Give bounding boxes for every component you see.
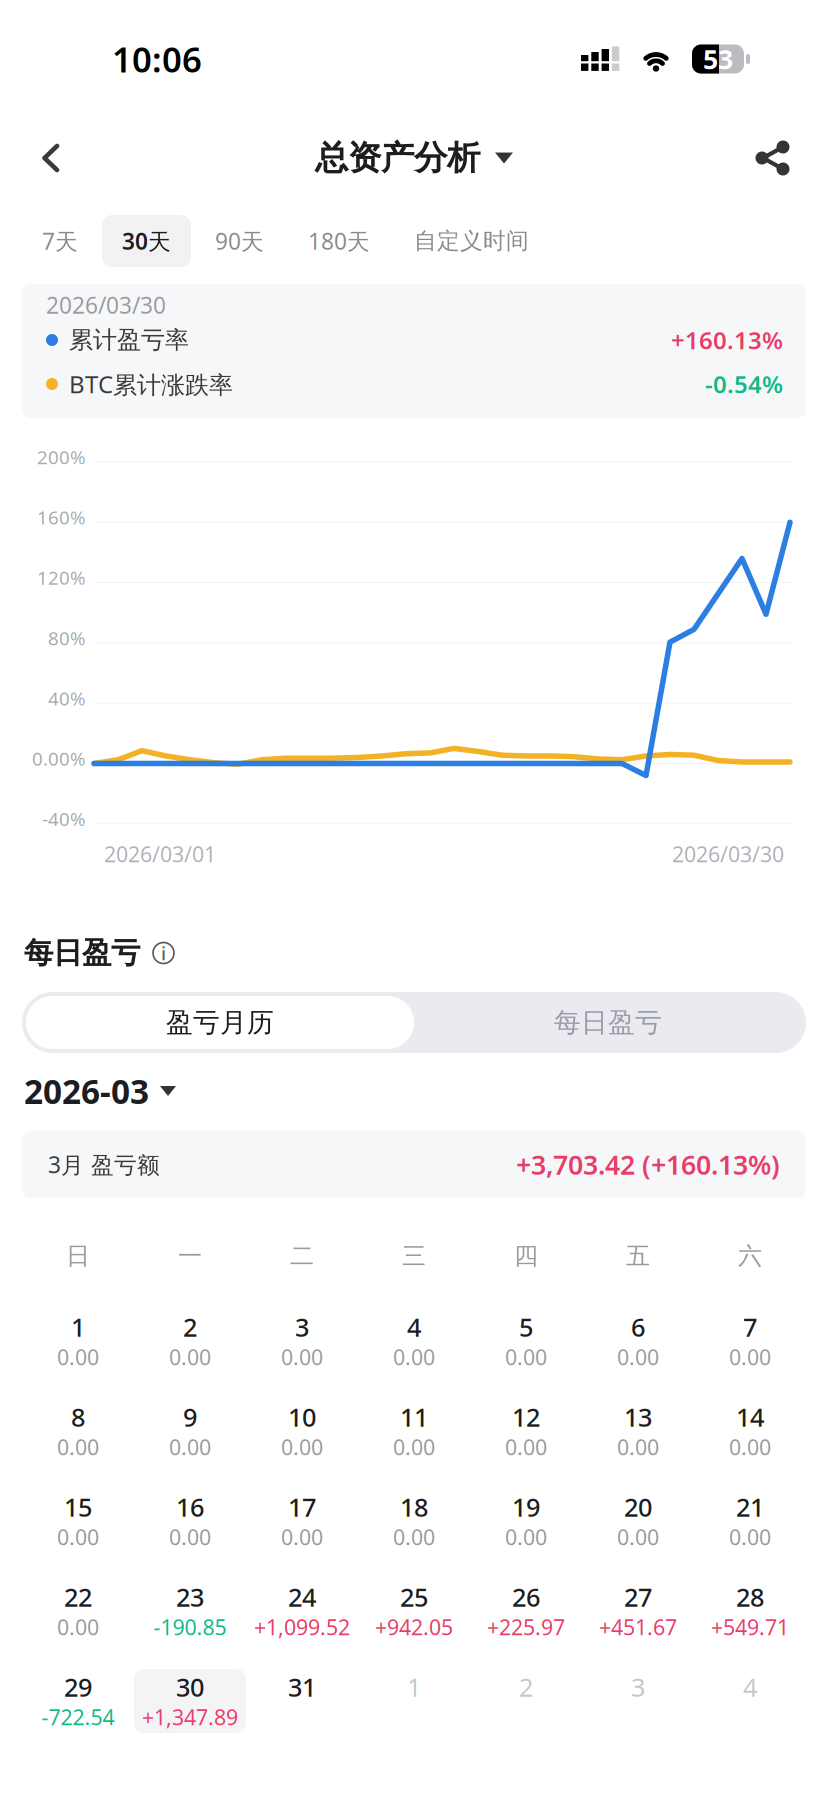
button[interactable]: 24 bbox=[246, 1579, 358, 1643]
staticText: 0.00 bbox=[57, 1523, 99, 1551]
button[interactable]: 17 bbox=[246, 1489, 358, 1553]
button[interactable]: 1 bbox=[358, 1669, 470, 1733]
button[interactable]: 1 bbox=[22, 1309, 134, 1373]
staticText: 0.00 bbox=[281, 1343, 323, 1371]
button[interactable]: 6 bbox=[582, 1309, 694, 1373]
staticText: -40% bbox=[42, 806, 86, 831]
button[interactable]: 13 bbox=[582, 1399, 694, 1463]
staticText: +1,347.89 bbox=[142, 1703, 238, 1731]
button[interactable]: 2026-03 bbox=[0, 1071, 176, 1111]
button[interactable]: 3 bbox=[246, 1309, 358, 1373]
button[interactable]: 27 bbox=[582, 1579, 694, 1643]
staticText: 11 bbox=[400, 1400, 428, 1434]
staticText: 2026/03/30 bbox=[672, 840, 784, 868]
staticText: 每日盈亏 bbox=[24, 935, 140, 971]
staticText: 1 bbox=[407, 1670, 421, 1704]
staticText: 31 bbox=[288, 1670, 316, 1704]
button[interactable]: 180天 bbox=[288, 215, 390, 267]
button[interactable]: 16 bbox=[134, 1489, 246, 1553]
button[interactable]: Share bbox=[731, 121, 814, 195]
button[interactable]: 29 bbox=[22, 1669, 134, 1733]
button[interactable]: 2 bbox=[470, 1669, 582, 1733]
button[interactable]: 4 bbox=[358, 1309, 470, 1373]
button[interactable]: 21 bbox=[694, 1489, 806, 1553]
button[interactable]: 自定义时间 bbox=[394, 216, 549, 266]
staticText: 120% bbox=[37, 565, 86, 590]
staticText: 五 bbox=[626, 1241, 650, 1271]
staticText: 0.00 bbox=[281, 1523, 323, 1551]
button[interactable]: 9 bbox=[134, 1399, 246, 1463]
staticText: 三 bbox=[402, 1241, 426, 1271]
button[interactable]: 18 bbox=[358, 1489, 470, 1553]
button[interactable]: 10 bbox=[246, 1399, 358, 1463]
button[interactable]: 31 bbox=[246, 1669, 358, 1733]
button[interactable]: 每日盈亏 bbox=[414, 996, 802, 1049]
staticText: 二 bbox=[290, 1241, 314, 1271]
button[interactable]: 2 bbox=[134, 1309, 246, 1373]
button[interactable]: 30天 bbox=[102, 215, 191, 267]
staticText: 12 bbox=[512, 1400, 540, 1434]
button[interactable]: 25 bbox=[358, 1579, 470, 1643]
button[interactable]: 15 bbox=[22, 1489, 134, 1553]
staticText: 17 bbox=[288, 1490, 316, 1524]
staticText: 15 bbox=[64, 1490, 92, 1524]
button[interactable]: 11 bbox=[358, 1399, 470, 1463]
staticText: 2026/03/30 bbox=[46, 290, 166, 320]
staticText: +1,099.52 bbox=[254, 1613, 350, 1641]
staticText: 9 bbox=[183, 1400, 197, 1434]
button[interactable]: 14 bbox=[694, 1399, 806, 1463]
button[interactable]: 7天 bbox=[22, 215, 98, 267]
staticText: 0.00 bbox=[169, 1343, 211, 1371]
staticText: 16 bbox=[176, 1490, 204, 1524]
staticText: 自定义时间 bbox=[414, 227, 529, 255]
button[interactable]: Back bbox=[14, 119, 88, 197]
staticText: 26 bbox=[512, 1580, 540, 1614]
button[interactable]: 20 bbox=[582, 1489, 694, 1553]
button[interactable]: 盈亏月历 bbox=[26, 996, 414, 1049]
staticText: 四 bbox=[514, 1241, 538, 1271]
staticText: 0.00 bbox=[617, 1523, 659, 1551]
staticText: 0.00 bbox=[57, 1343, 99, 1371]
staticText: 3 bbox=[631, 1670, 645, 1704]
staticText: 180天 bbox=[308, 226, 370, 256]
staticText: 2026/03/01 bbox=[104, 840, 216, 868]
staticText: 18 bbox=[400, 1490, 428, 1524]
staticText: 盈亏月历 bbox=[166, 1006, 274, 1039]
staticText: +549.71 bbox=[711, 1613, 789, 1641]
staticText: i bbox=[161, 941, 166, 965]
button[interactable]: 3 bbox=[582, 1669, 694, 1733]
staticText: 40% bbox=[48, 686, 86, 711]
staticText: 19 bbox=[512, 1490, 540, 1524]
button[interactable]: 28 bbox=[694, 1579, 806, 1643]
staticText: 2 bbox=[519, 1670, 533, 1704]
button[interactable]: 5 bbox=[470, 1309, 582, 1373]
button[interactable]: 8 bbox=[22, 1399, 134, 1463]
button[interactable]: 22 bbox=[22, 1579, 134, 1643]
button[interactable]: 90天 bbox=[195, 215, 284, 267]
staticText: 24 bbox=[288, 1580, 316, 1614]
staticText: 0.00 bbox=[393, 1433, 435, 1461]
staticText: 6 bbox=[631, 1310, 645, 1344]
button[interactable]: 4 bbox=[694, 1669, 806, 1733]
staticText: 总资产分析 bbox=[315, 137, 480, 178]
staticText: 13 bbox=[624, 1400, 652, 1434]
staticText: 30 bbox=[176, 1670, 204, 1704]
button[interactable]: 30 bbox=[134, 1669, 246, 1733]
staticText: 0.00 bbox=[169, 1433, 211, 1461]
staticText: 29 bbox=[64, 1670, 92, 1704]
staticText: 0.00 bbox=[57, 1433, 99, 1461]
button[interactable]: 23 bbox=[134, 1579, 246, 1643]
staticText: BTC累计涨跌率 bbox=[69, 368, 233, 400]
staticText: 4 bbox=[407, 1310, 421, 1344]
button[interactable]: 7 bbox=[694, 1309, 806, 1373]
staticText: 0.00 bbox=[505, 1433, 547, 1461]
staticText: 10:06 bbox=[112, 36, 202, 82]
staticText: 14 bbox=[736, 1400, 764, 1434]
staticText: 27 bbox=[624, 1580, 652, 1614]
button[interactable]: 26 bbox=[470, 1579, 582, 1643]
staticText: 0.00 bbox=[729, 1523, 771, 1551]
button[interactable]: 19 bbox=[470, 1489, 582, 1553]
staticText: +3,703.42 (+160.13%) bbox=[516, 1147, 780, 1182]
staticText: 23 bbox=[176, 1580, 204, 1614]
button[interactable]: 12 bbox=[470, 1399, 582, 1463]
